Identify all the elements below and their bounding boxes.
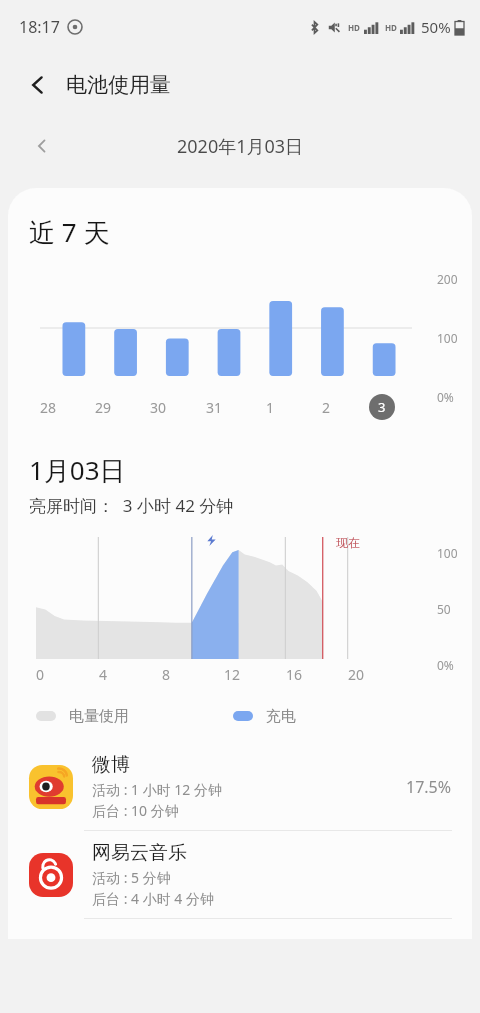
staticText: 网易云音乐: [92, 841, 187, 865]
staticText: 充电: [266, 707, 296, 726]
staticText: 电池使用量: [66, 72, 171, 98]
staticText: 31: [206, 398, 223, 417]
staticText: 30: [150, 398, 167, 417]
staticText: 17.5%: [406, 776, 452, 798]
staticText: 18:17: [19, 16, 60, 38]
staticText: 12: [224, 665, 241, 684]
staticText: 活动 : 5 分钟: [92, 868, 171, 887]
staticText: 8: [162, 665, 171, 684]
staticText: 0%: [437, 389, 454, 405]
staticText: HD: [348, 22, 360, 33]
staticText: 2: [322, 398, 331, 417]
staticText: 100: [437, 330, 458, 346]
staticText: 50%: [421, 17, 451, 37]
staticText: 28: [40, 398, 57, 417]
staticText: 近 7 天: [29, 214, 110, 250]
staticText: 20: [348, 665, 365, 684]
staticText: 电量使用: [69, 707, 129, 726]
staticText: 29: [95, 398, 112, 417]
staticText: 微博: [92, 753, 130, 777]
button[interactable]: 31: [200, 392, 229, 423]
staticText: 活动 : 1 小时 12 分钟: [92, 780, 222, 799]
staticText: 3: [378, 398, 386, 416]
staticText: 4: [99, 665, 108, 684]
button[interactable]: 1: [260, 392, 281, 423]
button[interactable]: 29: [89, 392, 118, 423]
staticText: 0%: [437, 657, 454, 673]
button[interactable]: 网易云音乐: [8, 831, 472, 918]
button[interactable]: 微博: [8, 743, 472, 830]
staticText: 后台 : 10 分钟: [92, 801, 179, 820]
staticText: 亮屏时间： 3 小时 42 分钟: [29, 494, 234, 517]
staticText: 100: [437, 545, 458, 561]
staticText: 1月03日: [29, 452, 126, 488]
button[interactable]: 30: [144, 392, 173, 423]
staticText: 16: [286, 665, 303, 684]
staticText: 200: [437, 271, 458, 287]
staticText: 后台 : 4 小时 4 分钟: [92, 889, 214, 908]
staticText: HD: [385, 22, 397, 33]
button[interactable]: Back: [16, 63, 60, 107]
button[interactable]: 2: [316, 392, 337, 423]
button[interactable]: 3: [369, 394, 395, 420]
staticText: 1: [266, 398, 275, 417]
staticText: 0: [36, 665, 45, 684]
staticText: 50: [437, 601, 451, 617]
button[interactable]: 28: [34, 392, 63, 423]
button[interactable]: Previous day: [22, 126, 62, 166]
staticText: 2020年1月03日: [177, 134, 304, 159]
staticText: 现在: [336, 535, 360, 550]
